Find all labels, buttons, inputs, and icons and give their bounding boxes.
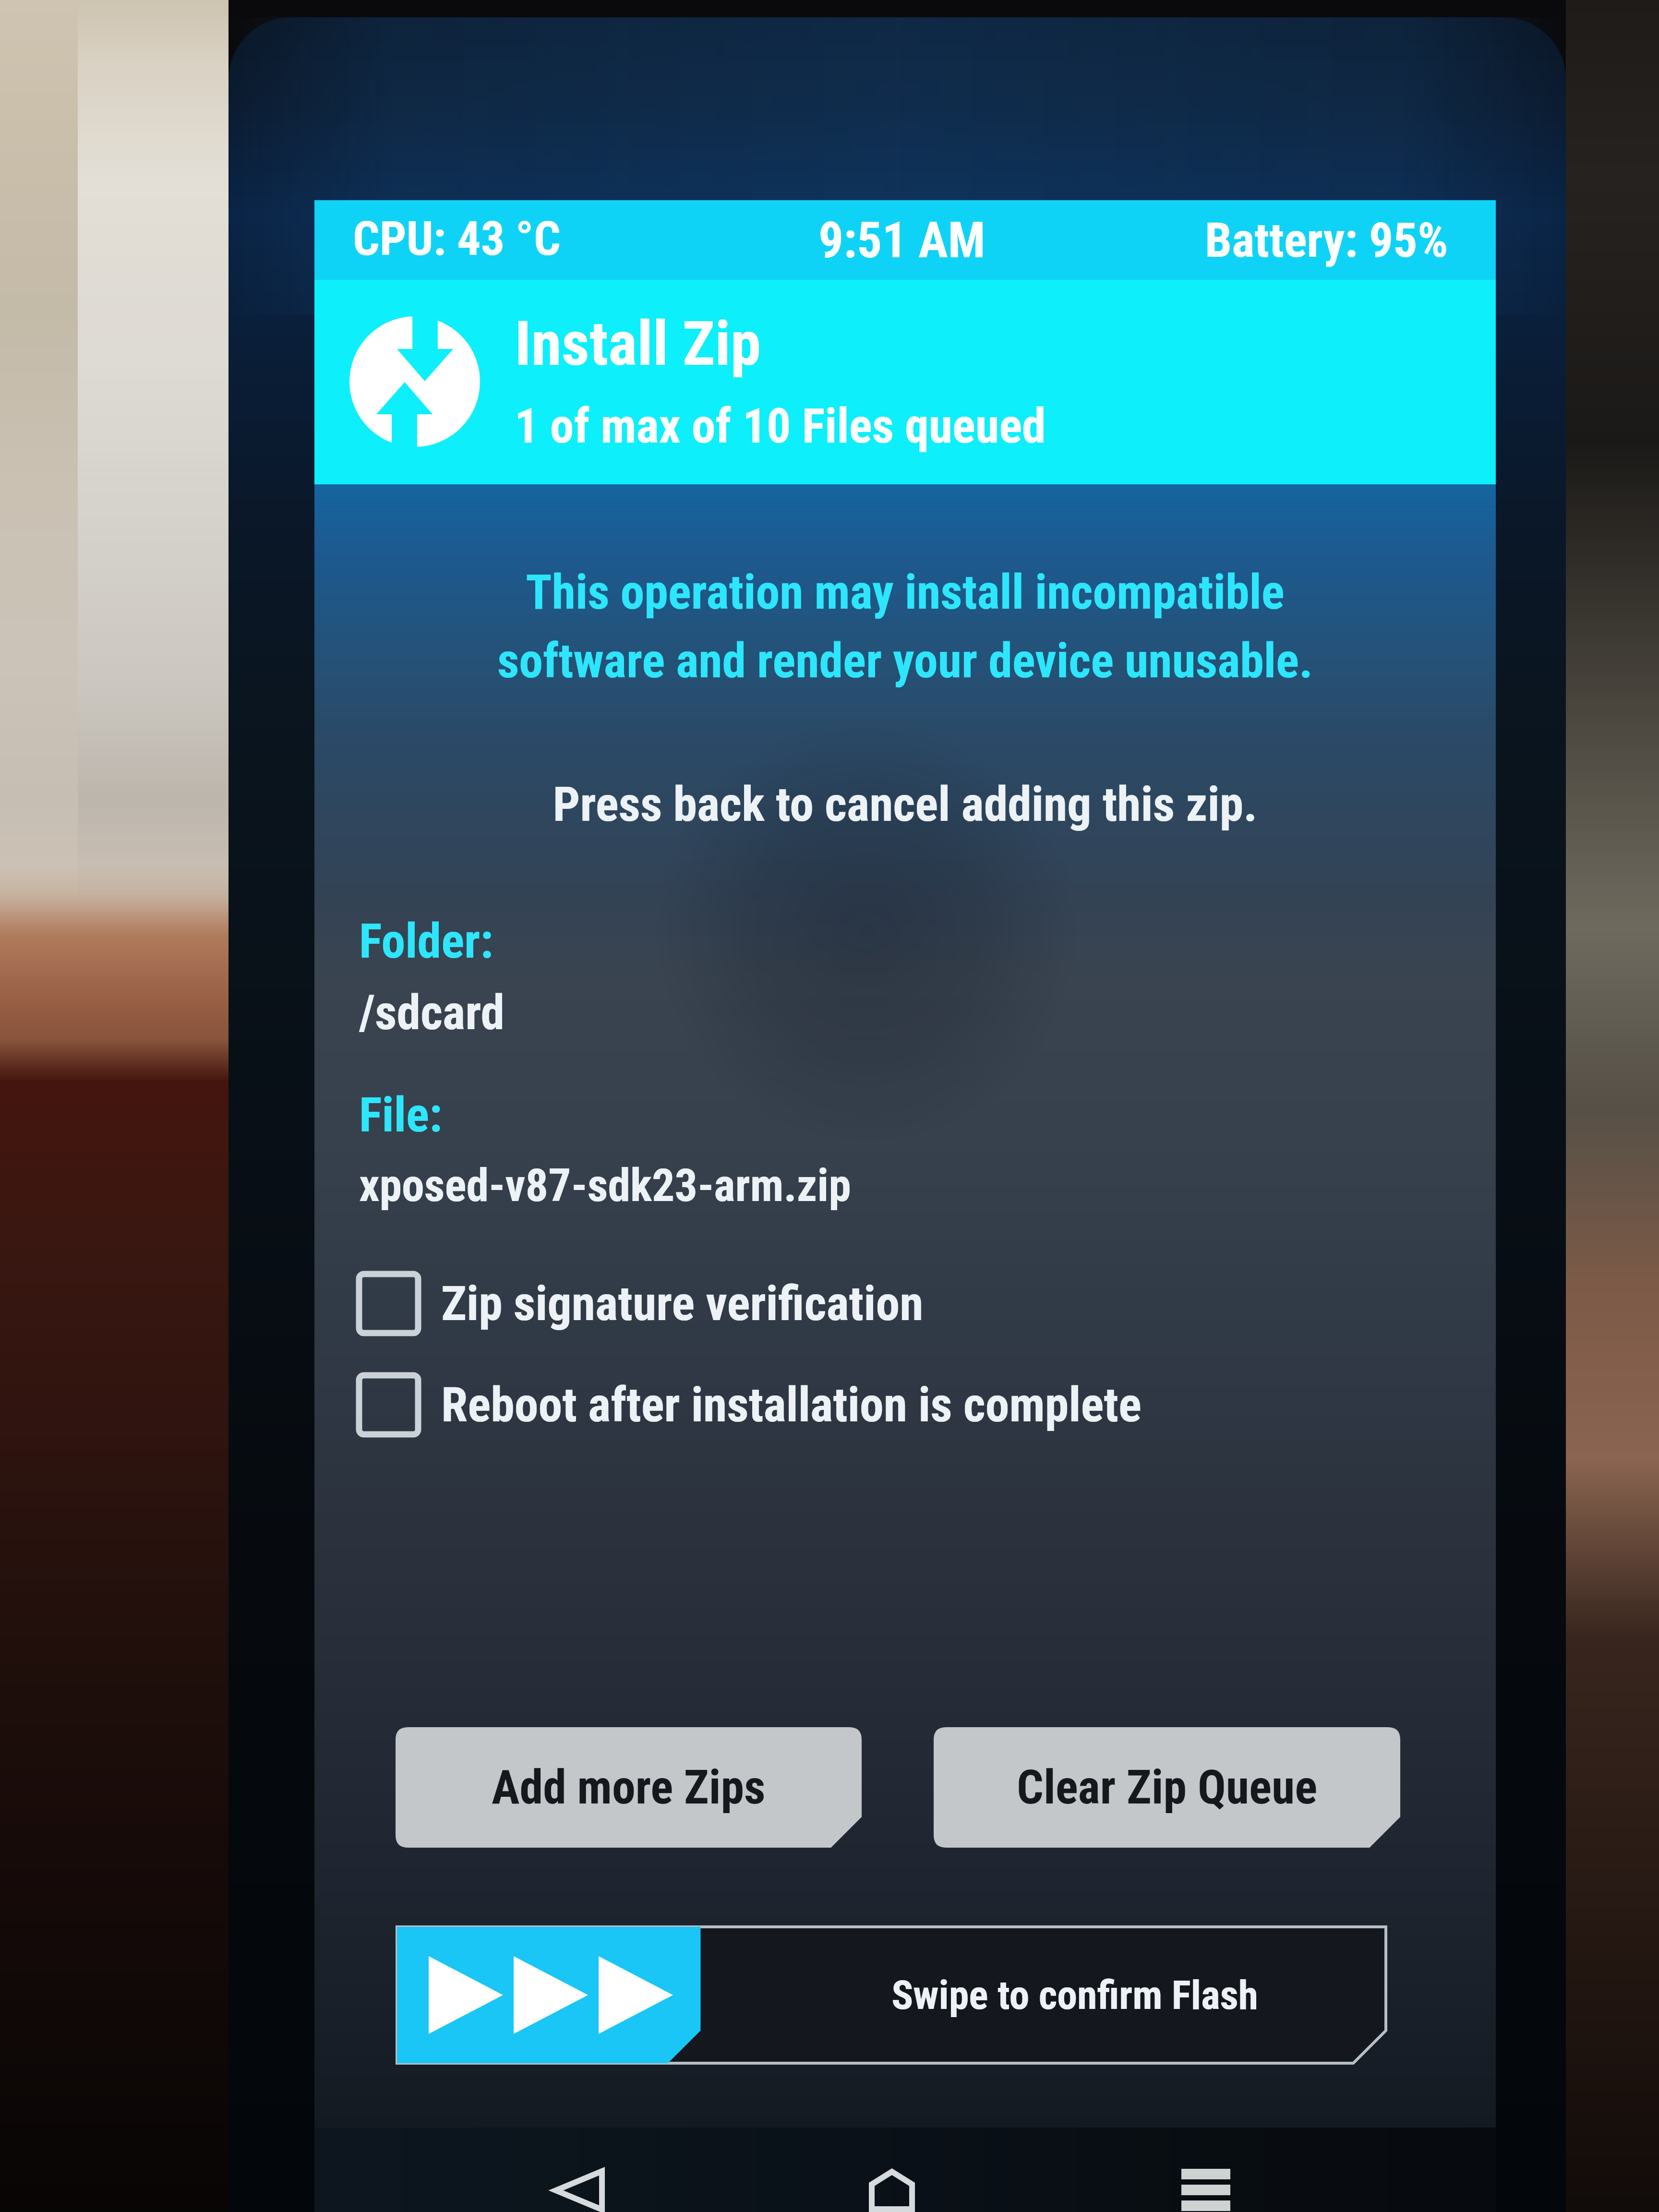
staticText: Zip signature verification bbox=[441, 1275, 924, 1332]
staticText: Reboot after installation is complete bbox=[441, 1377, 1142, 1433]
staticText: 1 of max of 10 Files queued bbox=[515, 398, 1046, 454]
staticText: File: bbox=[359, 1087, 443, 1143]
button[interactable]: Recent apps bbox=[1134, 2169, 1278, 2212]
button[interactable]: Swipe to confirm Flash bbox=[397, 1927, 1386, 2063]
staticText: Folder: bbox=[359, 913, 493, 969]
button[interactable]: Add more Zips bbox=[396, 1727, 862, 1848]
staticText: xposed-v87-sdk23-arm.zip bbox=[359, 1159, 851, 1212]
staticText: /sdcard bbox=[359, 985, 505, 1041]
button[interactable]: Reboot after installation is complete bbox=[359, 1371, 1496, 1438]
staticText: 9:51 AM bbox=[818, 211, 986, 269]
staticText: Clear Zip Queue bbox=[1017, 1760, 1318, 1815]
button[interactable]: Clear Zip Queue bbox=[934, 1727, 1400, 1848]
staticText: Swipe to confirm Flash bbox=[891, 1972, 1259, 2019]
button[interactable]: Home bbox=[820, 2169, 964, 2212]
button[interactable]: Install Zip bbox=[314, 280, 1496, 484]
staticText: Install Zip bbox=[515, 308, 761, 380]
staticText: This operation may install incompatible … bbox=[314, 564, 1496, 689]
staticText: Add more Zips bbox=[492, 1760, 766, 1815]
button[interactable]: Zip signature verification bbox=[359, 1270, 1496, 1337]
staticText: CPU: 43 °C bbox=[353, 211, 561, 266]
staticText: Press back to cancel adding this zip. bbox=[314, 776, 1496, 832]
button[interactable]: Back bbox=[507, 2169, 651, 2212]
staticText: Battery: 95% bbox=[1205, 212, 1448, 268]
